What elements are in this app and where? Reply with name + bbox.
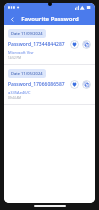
button[interactable]: Copy password bbox=[82, 40, 91, 49]
button[interactable]: Date 11/09/2024 bbox=[4, 25, 95, 64]
staticText: a335Ae46/C bbox=[8, 90, 31, 95]
button[interactable]: Date 11/05/2024 bbox=[4, 65, 95, 104]
staticText: Favourite Password bbox=[21, 15, 79, 23]
staticText: Password_173448442879 bbox=[8, 41, 67, 48]
staticText: Date 11/09/2024 bbox=[11, 31, 43, 36]
button[interactable]: Favourite bbox=[70, 80, 79, 89]
staticText: 09:44 AM bbox=[8, 96, 22, 100]
button[interactable]: Favourite bbox=[70, 40, 79, 49]
staticText: Password_170660865877 bbox=[8, 81, 67, 88]
button[interactable]: Back bbox=[7, 14, 17, 24]
staticText: 14:52 PM bbox=[8, 56, 21, 60]
staticText: Microsoft Visr bbox=[8, 50, 34, 55]
staticText: Date 11/05/2024 bbox=[11, 71, 43, 76]
button[interactable]: Copy password bbox=[82, 80, 91, 89]
